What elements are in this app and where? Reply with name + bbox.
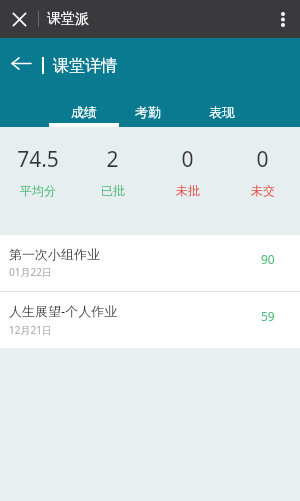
staticText: 已批 bbox=[101, 183, 125, 198]
staticText: 课堂派 bbox=[47, 10, 89, 28]
button[interactable]: 0 bbox=[225, 127, 300, 235]
staticText: 01月22日 bbox=[9, 265, 52, 279]
button[interactable]: Back bbox=[0, 42, 42, 84]
staticText: 2 bbox=[106, 145, 119, 174]
button[interactable]: Close bbox=[0, 0, 38, 38]
staticText: 90 bbox=[261, 251, 275, 267]
button[interactable]: 考勤 bbox=[123, 96, 173, 127]
staticText: 第一次小组作业 bbox=[9, 246, 100, 262]
staticText: 考勤 bbox=[135, 104, 161, 120]
staticText: 成绩 bbox=[71, 104, 97, 120]
staticText: 未交 bbox=[251, 183, 275, 198]
staticText: 59 bbox=[261, 308, 275, 324]
button[interactable]: 第一次小组作业 bbox=[0, 235, 300, 291]
staticText: 12月21日 bbox=[9, 323, 52, 337]
button[interactable]: 表现 bbox=[197, 96, 247, 127]
staticText: 未批 bbox=[176, 183, 200, 198]
staticText: 0 bbox=[181, 145, 194, 174]
button[interactable]: 2 bbox=[75, 127, 150, 235]
button[interactable]: 74.5 bbox=[0, 127, 75, 235]
staticText: 0 bbox=[256, 145, 269, 174]
button[interactable]: 成绩 bbox=[49, 96, 119, 127]
button[interactable]: 人生展望-个人作业 bbox=[0, 292, 300, 348]
button[interactable]: More options bbox=[266, 0, 300, 38]
staticText: 课堂详情 bbox=[53, 56, 117, 76]
button[interactable]: 0 bbox=[150, 127, 225, 235]
staticText: 表现 bbox=[209, 104, 235, 120]
staticText: 平均分 bbox=[20, 183, 56, 198]
staticText: 人生展望-个人作业 bbox=[9, 302, 118, 320]
staticText: 74.5 bbox=[17, 145, 59, 174]
